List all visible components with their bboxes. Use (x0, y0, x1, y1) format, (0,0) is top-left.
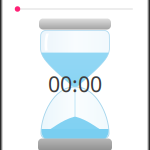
staticText: 00:00 (48, 70, 102, 98)
